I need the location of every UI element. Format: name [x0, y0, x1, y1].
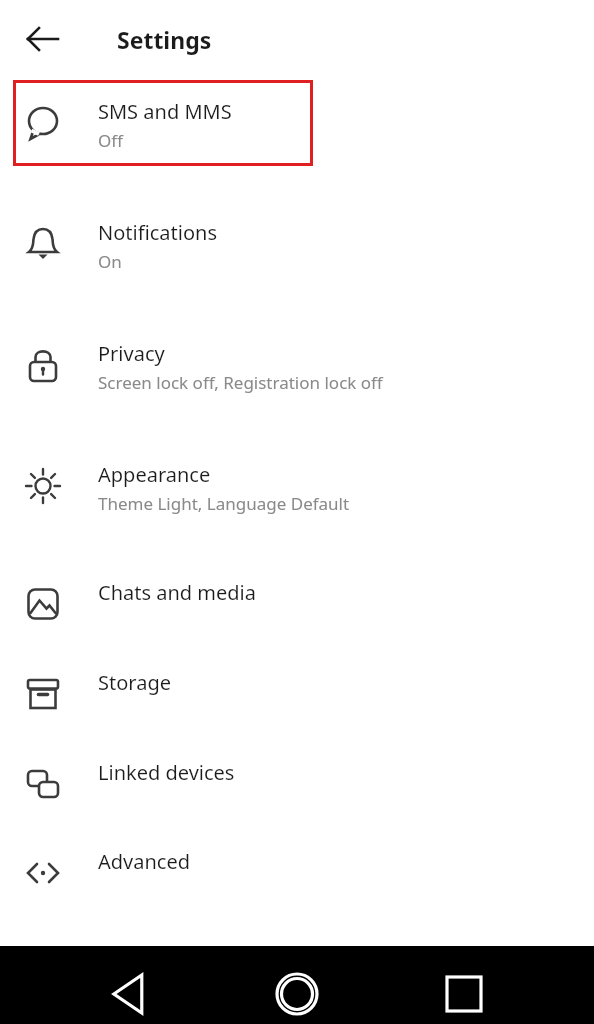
staticText: Appearance: [98, 461, 211, 488]
button[interactable]: Back: [96, 960, 164, 1024]
button[interactable]: Chats and media: [0, 561, 594, 651]
button[interactable]: Storage: [0, 651, 594, 741]
staticText: Linked devices: [98, 759, 235, 786]
staticText: Notifications: [98, 219, 217, 246]
button[interactable]: Notifications: [0, 201, 594, 322]
button[interactable]: Appearance: [0, 443, 594, 561]
button[interactable]: Back: [18, 14, 68, 64]
staticText: On: [98, 250, 122, 273]
button[interactable]: Advanced: [0, 830, 594, 920]
staticText: Off: [98, 129, 123, 152]
staticText: Theme Light, Language Default: [98, 492, 350, 515]
staticText: Advanced: [98, 848, 190, 875]
button[interactable]: Home: [263, 960, 331, 1024]
staticText: Screen lock off, Registration lock off: [98, 371, 383, 394]
staticText: Chats and media: [98, 579, 256, 606]
button[interactable]: Linked devices: [0, 741, 594, 830]
button[interactable]: Recent apps: [430, 960, 498, 1024]
button[interactable]: SMS and MMS: [0, 80, 594, 201]
staticText: Storage: [98, 669, 171, 696]
staticText: Settings: [117, 24, 212, 55]
staticText: Privacy: [98, 340, 165, 367]
button[interactable]: Privacy: [0, 322, 594, 443]
staticText: SMS and MMS: [98, 98, 232, 125]
